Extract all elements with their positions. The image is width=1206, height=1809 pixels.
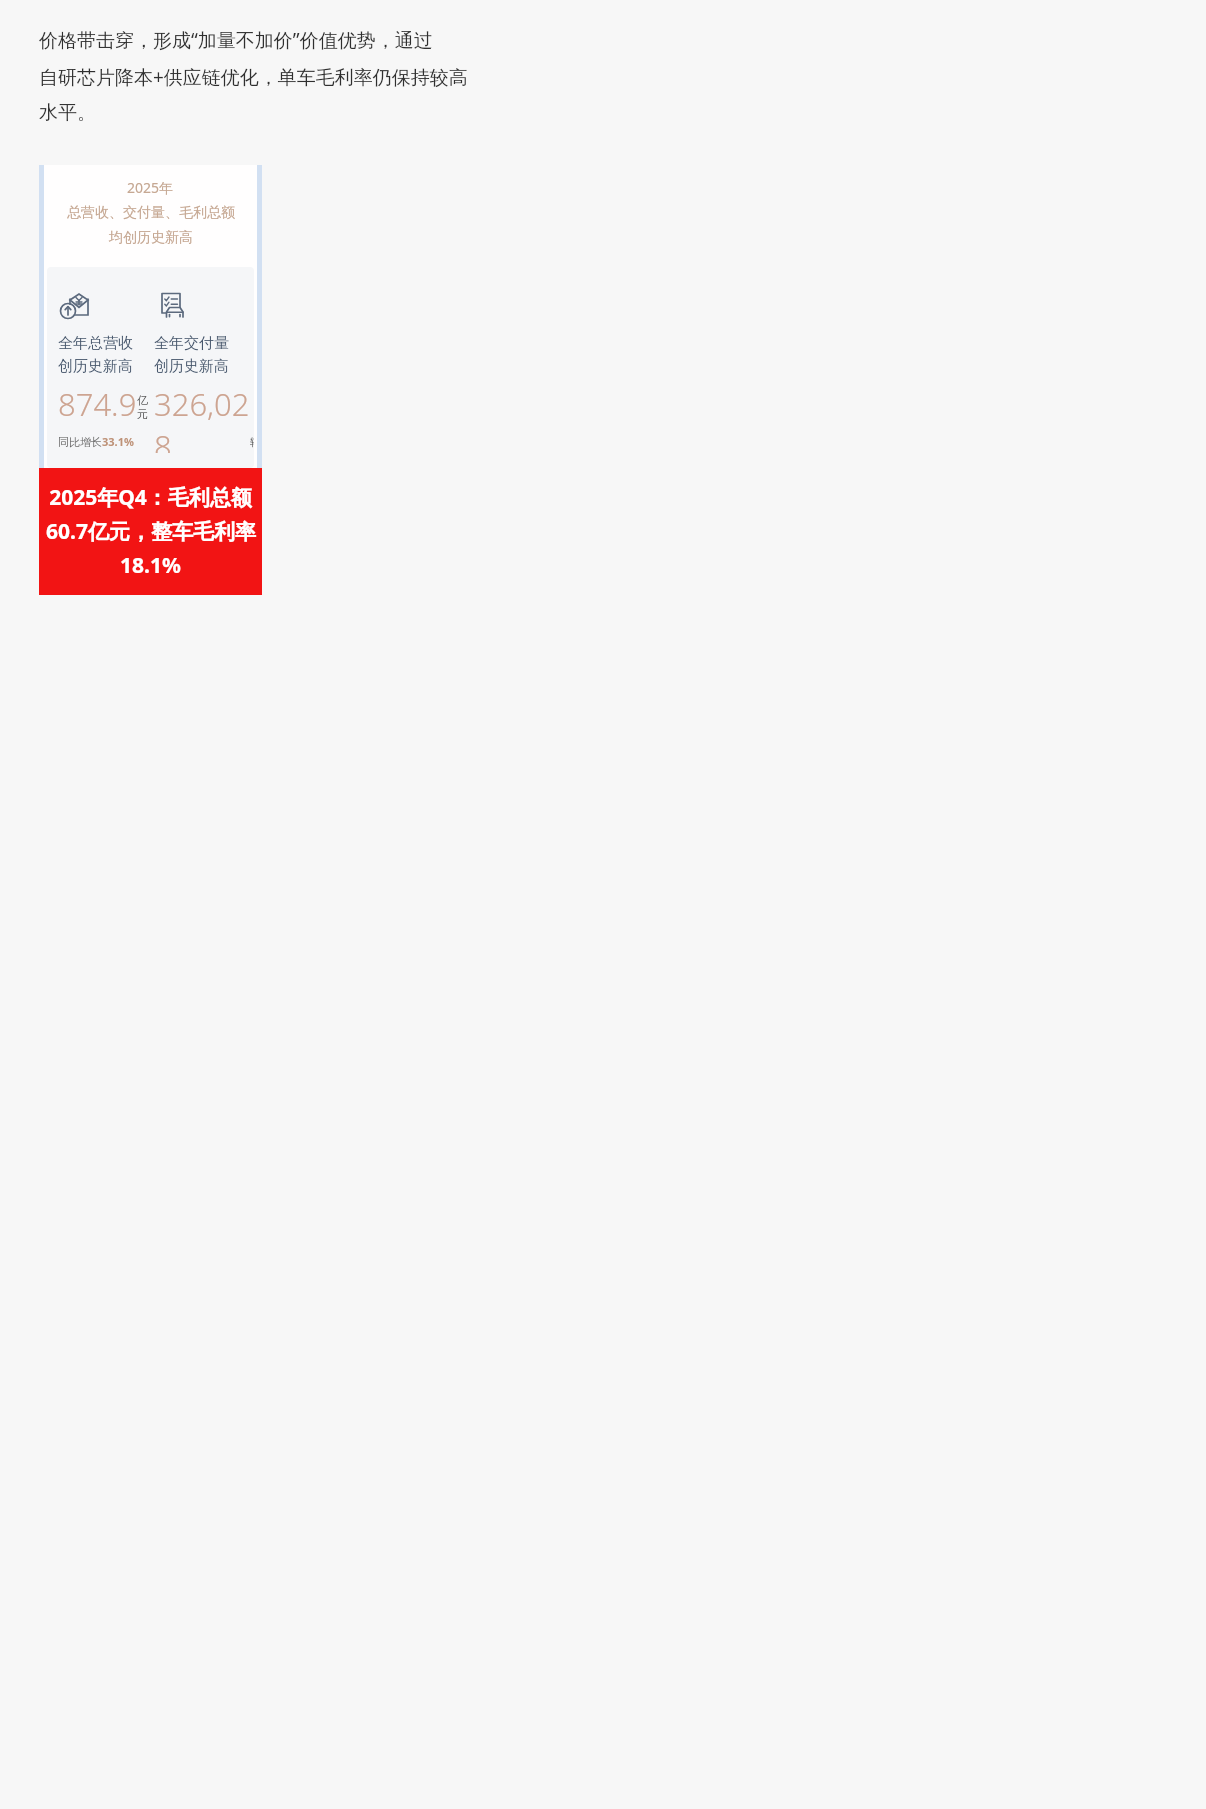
staticText: 18.1%	[120, 551, 181, 580]
staticText: 60.7亿元，整车毛利率	[46, 517, 256, 546]
staticText: 创历史新高	[154, 357, 229, 376]
staticText: 全年交付量	[154, 334, 229, 353]
other: Total revenue	[58, 288, 92, 322]
staticText: 2025年	[127, 178, 174, 197]
staticText: 自研芯片降本+供应链优化，单车毛利率仍保持较高	[39, 64, 468, 90]
staticText: 创历史新高	[58, 357, 133, 376]
staticText: 价格带击穿，形成“加量不加价”价值优势，通过	[39, 27, 433, 53]
staticText: 水平。	[39, 101, 96, 125]
staticText: 同比增长33.1%	[58, 434, 134, 449]
staticText: 2025年Q4：毛利总额	[49, 483, 252, 512]
staticText: 全年总营收	[58, 334, 133, 353]
other: Total deliveries	[154, 288, 188, 322]
staticText: 874.9	[58, 383, 137, 425]
staticText: 326,028	[154, 383, 250, 453]
staticText: 总营收、交付量、毛利总额	[67, 204, 235, 222]
staticText: 均创历史新高	[109, 229, 193, 247]
button[interactable]: 2025年Q4：毛利总额	[39, 468, 262, 595]
staticText: 亿元	[137, 393, 154, 421]
button[interactable]: 2025年	[39, 165, 262, 468]
